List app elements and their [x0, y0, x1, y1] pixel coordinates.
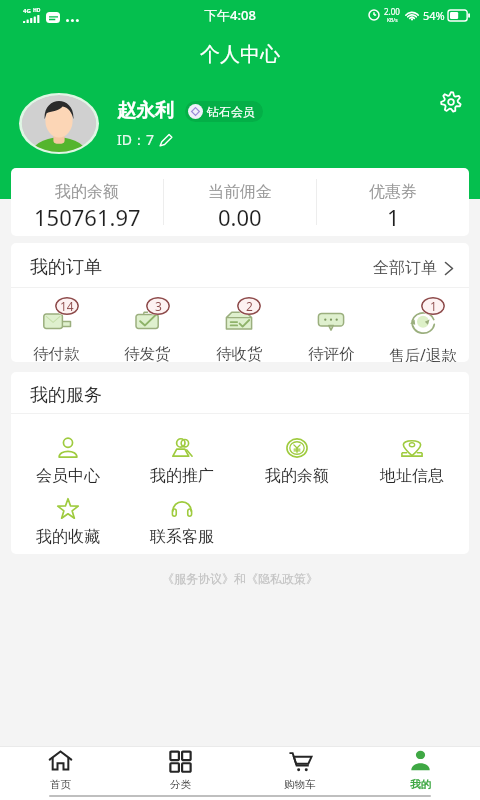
staticText: 3: [155, 298, 162, 314]
staticText: 联系客服: [150, 527, 214, 547]
staticText: HD: [33, 7, 41, 14]
staticText: 首页: [50, 778, 71, 791]
button[interactable]: 优惠券: [317, 168, 469, 236]
button[interactable]: 会员中心: [11, 414, 125, 486]
button[interactable]: Edit nickname: [159, 133, 173, 147]
staticText: 下午4:08: [204, 6, 256, 24]
button[interactable]: Settings: [440, 91, 462, 113]
staticText: 当前佣金: [208, 182, 272, 202]
button[interactable]: 联系客服: [125, 475, 239, 547]
staticText: 我的: [410, 778, 431, 791]
button[interactable]: 购物车: [240, 747, 360, 792]
staticText: KB/s: [387, 17, 398, 24]
button[interactable]: 全部订单: [373, 258, 453, 278]
button[interactable]: 首页: [0, 747, 120, 792]
staticText: 待收货: [216, 344, 263, 362]
staticText: 地址信息: [380, 466, 444, 486]
staticText: 《服务协议》和《隐私政策》: [0, 571, 480, 586]
staticText: 0.00: [218, 202, 262, 232]
button[interactable]: 待评价: [285, 288, 377, 362]
staticText: 赵永利: [117, 99, 174, 123]
button[interactable]: 1: [377, 288, 469, 362]
staticText: 个人中心: [200, 42, 280, 67]
staticText: 全部订单: [373, 258, 437, 278]
button[interactable]: 地址信息: [354, 414, 469, 486]
staticText: 待评价: [308, 344, 355, 362]
staticText: 我的订单: [30, 256, 102, 279]
staticText: 我的收藏: [36, 527, 100, 547]
button[interactable]: 钻石会员: [185, 101, 263, 122]
staticText: 我的推广: [150, 466, 214, 486]
staticText: 钻石会员: [207, 104, 255, 119]
button[interactable]: 我的余额: [239, 414, 354, 486]
button[interactable]: 3: [102, 288, 193, 362]
staticText: 待付款: [33, 344, 80, 362]
staticText: 待发货: [124, 344, 171, 362]
staticText: ID：7: [117, 130, 154, 149]
staticText: 14: [60, 298, 74, 314]
staticText: 分类: [170, 778, 191, 791]
staticText: 购物车: [284, 778, 316, 791]
button[interactable]: 我的推广: [125, 414, 239, 486]
staticText: 1: [387, 202, 400, 232]
staticText: 我的余额: [55, 182, 119, 202]
button[interactable]: 我的: [360, 747, 480, 792]
staticText: 我的余额: [265, 466, 329, 486]
staticText: 150761.97: [34, 202, 141, 232]
button[interactable]: 2: [193, 288, 285, 362]
staticText: 优惠券: [369, 182, 417, 202]
staticText: 4G: [23, 7, 31, 15]
button[interactable]: 分类: [120, 747, 240, 792]
staticText: 2: [246, 298, 253, 314]
staticText: 会员中心: [36, 466, 100, 486]
button[interactable]: 当前佣金: [164, 168, 316, 236]
button[interactable]: 14: [11, 288, 102, 362]
staticText: 2.00: [384, 6, 400, 17]
staticText: 售后/退款: [389, 344, 457, 362]
staticText: 54%: [423, 8, 445, 23]
staticText: 1: [430, 298, 437, 314]
staticText: 我的服务: [30, 384, 102, 407]
button[interactable]: 我的余额: [11, 168, 163, 236]
button[interactable]: 我的收藏: [11, 475, 125, 547]
